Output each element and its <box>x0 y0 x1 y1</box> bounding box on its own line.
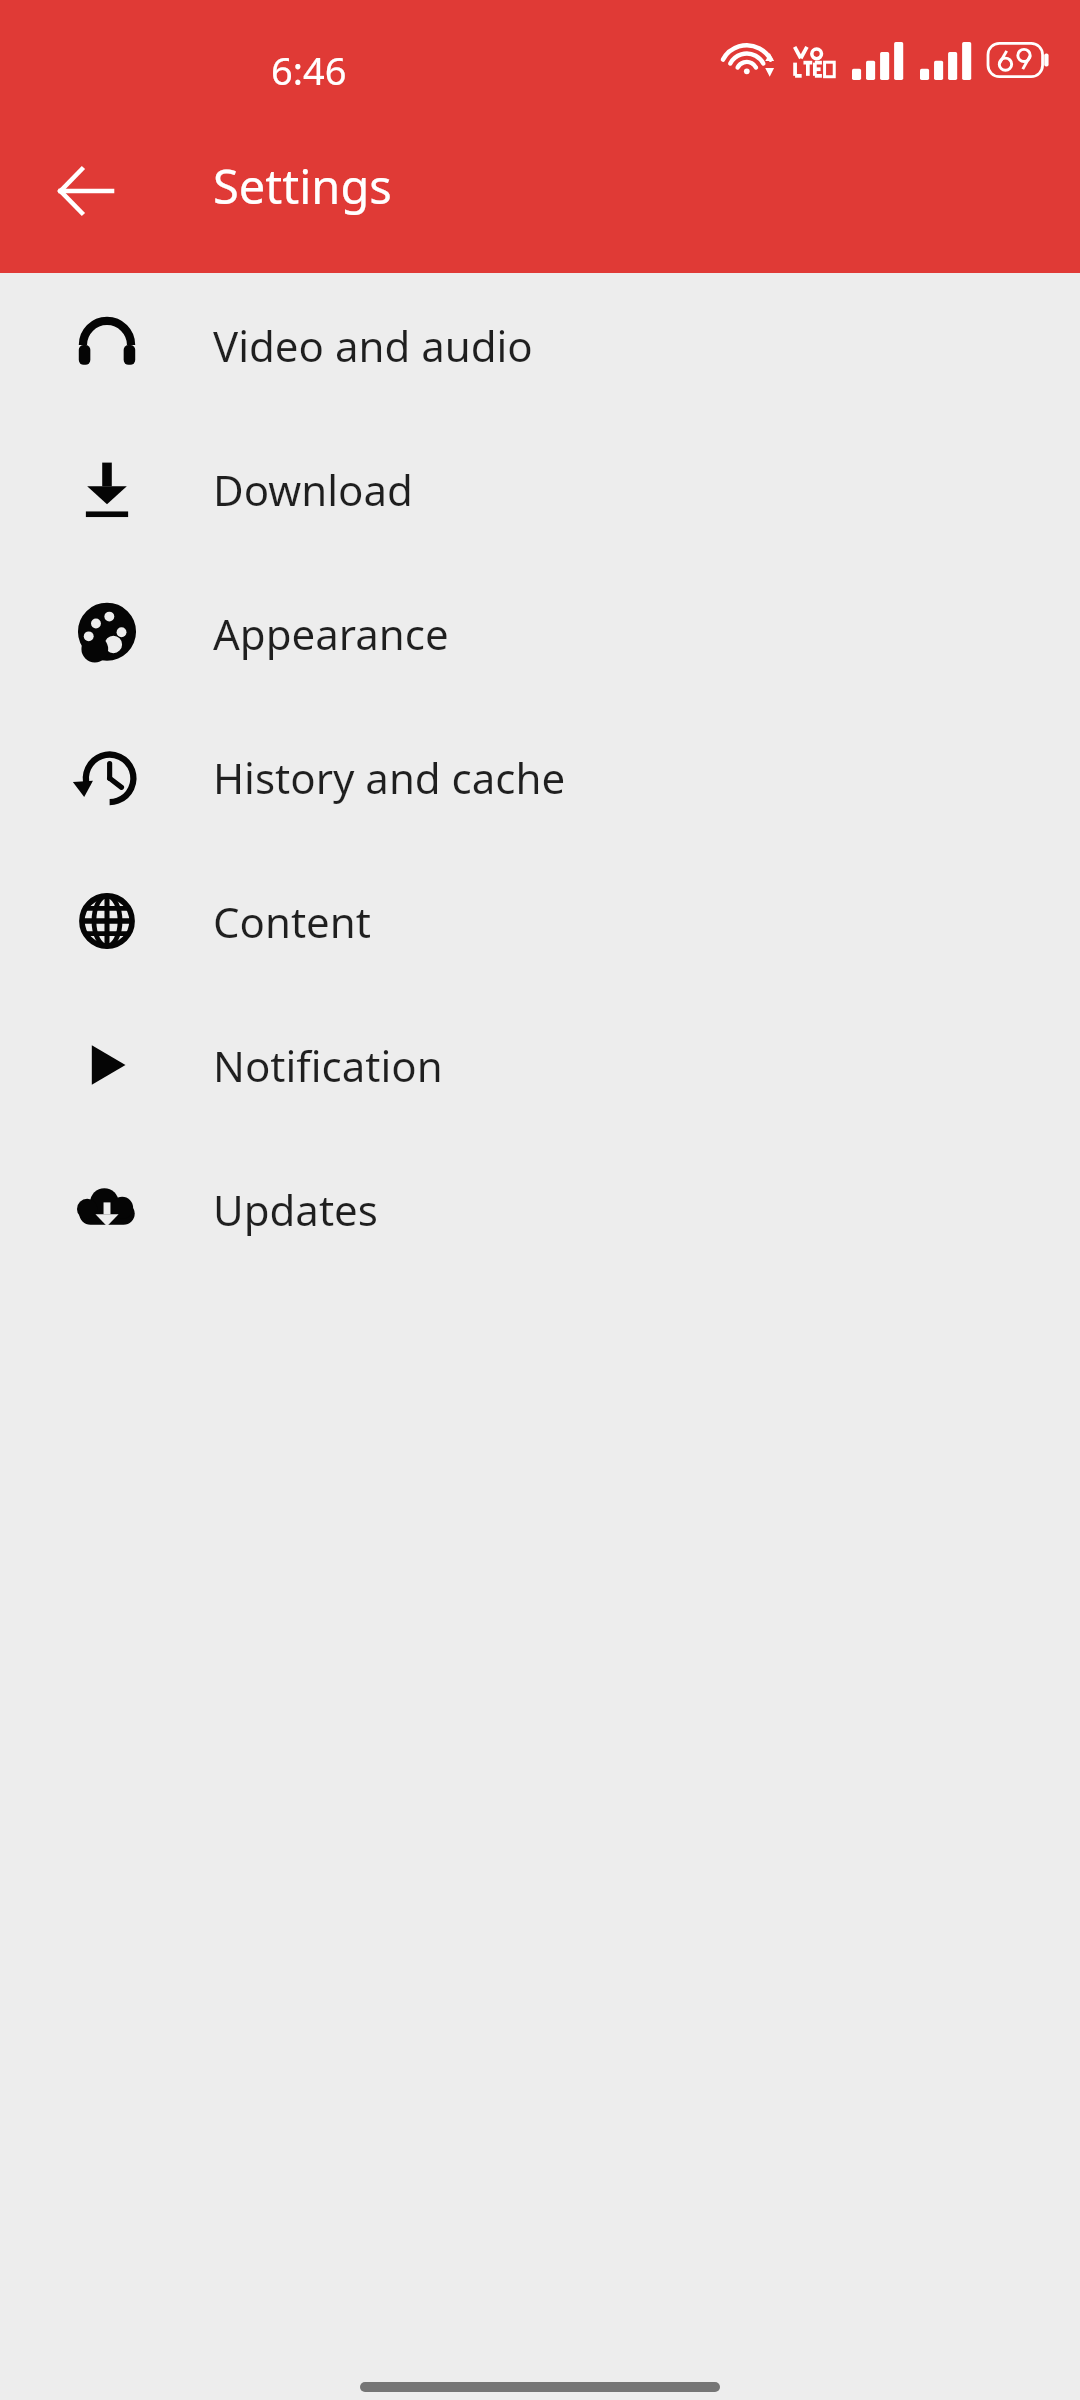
staticText: 6:46 <box>271 44 347 96</box>
button[interactable]: Notification <box>0 993 1080 1137</box>
staticText: Video and audio <box>213 317 533 374</box>
button[interactable]: Video and audio <box>0 273 1080 417</box>
staticText: Notification <box>213 1037 443 1094</box>
button[interactable]: History and cache <box>0 705 1080 849</box>
staticText: Content <box>213 893 371 950</box>
staticText: Settings <box>213 154 392 218</box>
staticText: History and cache <box>213 749 566 806</box>
staticText: Appearance <box>213 605 449 662</box>
staticText: Download <box>213 461 413 518</box>
button[interactable]: Content <box>0 849 1080 993</box>
button[interactable]: Back <box>30 135 142 247</box>
button[interactable]: Appearance <box>0 561 1080 705</box>
staticText: Updates <box>213 1181 378 1238</box>
button[interactable]: Updates <box>0 1137 1080 1281</box>
button[interactable]: Download <box>0 417 1080 561</box>
